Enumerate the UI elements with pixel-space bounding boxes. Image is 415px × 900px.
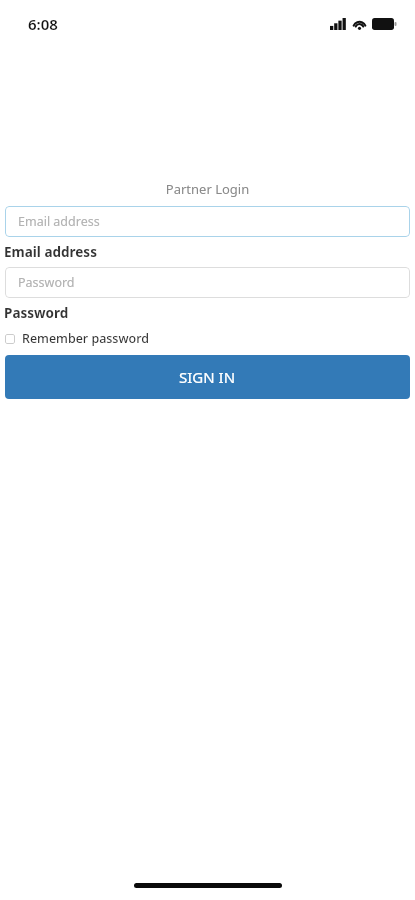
staticText: Remember password — [22, 330, 149, 347]
button[interactable]: Email address — [5, 206, 410, 237]
staticText: Email address — [18, 213, 100, 230]
staticText: Partner Login — [0, 180, 415, 198]
staticText: Password — [18, 274, 75, 291]
staticText: Email address — [4, 243, 97, 261]
staticText: SIGN IN — [179, 367, 236, 387]
button[interactable]: Remember password — [5, 330, 149, 347]
button[interactable]: Password — [5, 267, 410, 298]
button[interactable]: SIGN IN — [5, 355, 410, 399]
staticText: Password — [4, 304, 69, 322]
staticText: 6:08 — [28, 14, 58, 34]
